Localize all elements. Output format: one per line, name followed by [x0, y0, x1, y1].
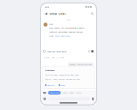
staticText: Outcome:: [45, 69, 55, 71]
button[interactable]: Info: [88, 50, 90, 52]
staticText: recap of yesterday's design review.: [49, 30, 84, 33]
staticText: Notes: [69, 91, 74, 94]
button[interactable]: Microphone: [92, 97, 94, 100]
staticText: Link:: [49, 34, 54, 37]
staticText: Thanks, reviewing now: [69, 63, 92, 66]
button[interactable]: Tasks: [62, 91, 67, 94]
staticText: Alex: [49, 23, 53, 25]
staticText: Ship the new onboarding flow next: [45, 73, 79, 76]
staticText: sprint; copy review owned by Sam.: [45, 78, 81, 80]
staticText: 3 min: [43, 56, 49, 59]
button[interactable]: Open: [91, 50, 93, 52]
staticText: PDF: [51, 56, 54, 59]
staticText: 2.1 MB: [56, 56, 63, 59]
staticText: Copy: [61, 84, 65, 86]
staticText: Summarize: [49, 91, 59, 94]
staticText: Office Chat: [47, 12, 65, 16]
staticText: Tasks: [62, 91, 67, 94]
staticText: More: [76, 91, 81, 94]
button[interactable]: Summarize: [48, 91, 61, 94]
staticText: Meeting recap notes: [46, 50, 66, 53]
button[interactable]: Filter: [43, 92, 46, 94]
staticText: Replace: [47, 84, 54, 86]
button[interactable]: Replace: [45, 84, 54, 86]
staticText: Hey team! I'm forwarding a quick: [49, 26, 84, 29]
button[interactable]: Notes: [69, 91, 74, 94]
staticText: 9:41: [45, 5, 49, 9]
button[interactable]: Add attachment: [43, 97, 46, 100]
button[interactable]: Back: [42, 11, 45, 17]
button[interactable]: Search: [90, 11, 94, 17]
staticText: Today: [66, 18, 71, 21]
button[interactable]: More: [76, 91, 81, 94]
button[interactable]: Copy: [59, 84, 65, 86]
staticText: notes.app/recap: [55, 34, 70, 37]
